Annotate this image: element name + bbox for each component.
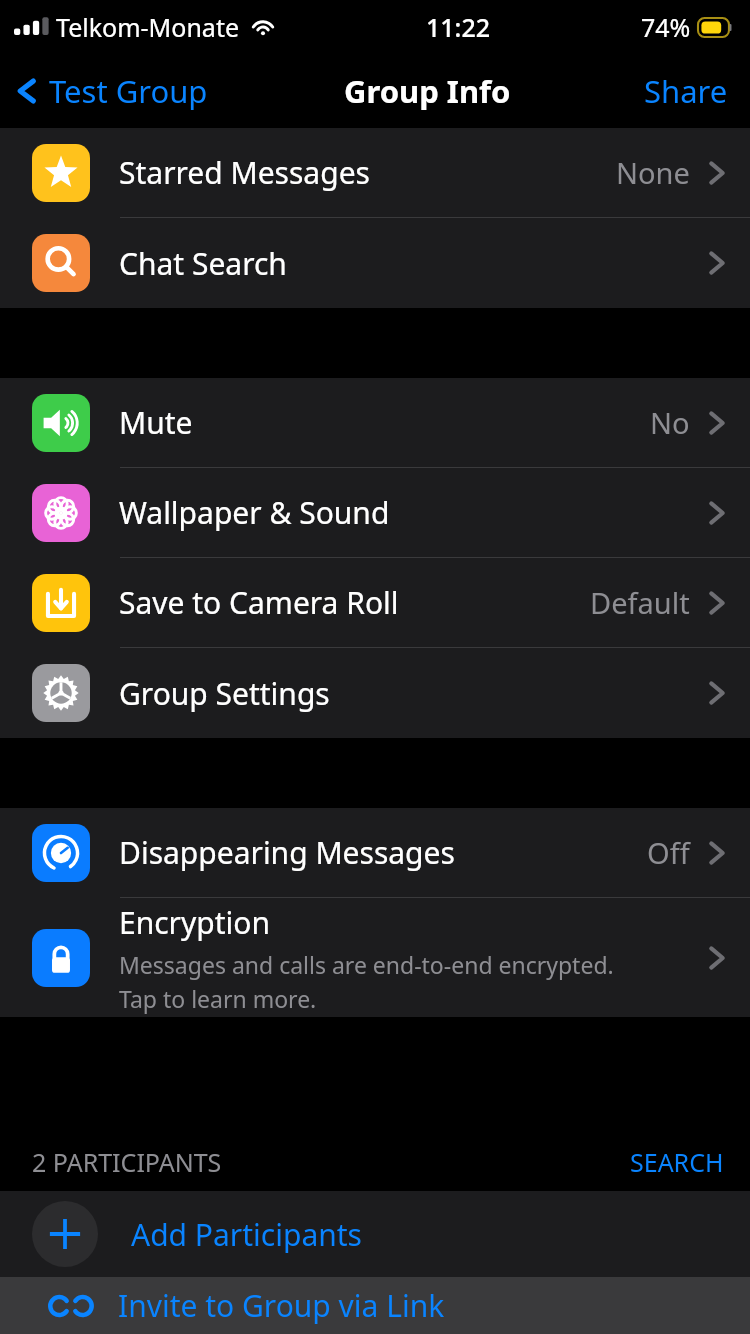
staticText: Tap to learn more. [119, 983, 317, 1014]
staticText: Wallpaper & Sound [119, 492, 390, 533]
other: Open [706, 246, 728, 280]
other: Open [706, 586, 728, 620]
button[interactable]: Encryption [0, 898, 750, 1017]
staticText: Telkom-Monate [56, 10, 240, 44]
other: Open [706, 836, 728, 870]
button[interactable]: Chat Search [0, 218, 750, 308]
staticText: Default [590, 583, 690, 622]
staticText: Mute [119, 402, 193, 443]
staticText: Disappearing Messages [119, 832, 455, 873]
button[interactable]: Invite to Group via Link [0, 1277, 750, 1334]
button[interactable]: Starred Messages [0, 128, 750, 218]
staticText: None [616, 153, 690, 192]
staticText: Add Participants [131, 1214, 362, 1255]
staticText: Off [647, 833, 690, 872]
other: Open [706, 156, 728, 190]
button[interactable]: Wallpaper & Sound [0, 468, 750, 558]
other: Open [706, 941, 728, 975]
staticText: Invite to Group via Link [118, 1285, 445, 1326]
button[interactable]: Mute [0, 378, 750, 468]
staticText: 74% [641, 10, 691, 44]
staticText: Test Group [49, 70, 208, 112]
staticText: Save to Camera Roll [119, 582, 399, 623]
staticText: Share [644, 70, 728, 112]
other: Open [706, 676, 728, 710]
button[interactable]: Test Group [14, 66, 216, 116]
button[interactable]: Add Participants [0, 1191, 750, 1277]
staticText: Group Settings [119, 673, 330, 714]
staticText: Starred Messages [119, 152, 370, 193]
staticText: SEARCH [630, 1145, 724, 1179]
staticText: No [650, 403, 690, 442]
staticText: Group Info [344, 70, 511, 112]
button[interactable]: SEARCH [630, 1145, 724, 1179]
staticText: Chat Search [119, 243, 287, 284]
button[interactable]: Save to Camera Roll [0, 558, 750, 648]
staticText: 11:22 [426, 10, 491, 44]
staticText: Messages and calls are end-to-end encryp… [119, 949, 614, 980]
button[interactable]: Disappearing Messages [0, 808, 750, 898]
other: Open [706, 406, 728, 440]
staticText: 2 PARTICIPANTS [32, 1145, 222, 1179]
staticText: Encryption [119, 902, 271, 943]
other: Open [706, 496, 728, 530]
button[interactable]: Group Settings [0, 648, 750, 738]
button[interactable]: Share [640, 64, 732, 118]
